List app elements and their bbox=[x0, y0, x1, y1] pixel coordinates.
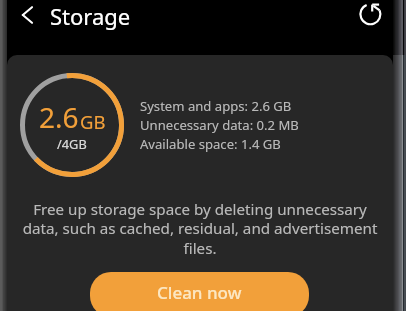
staticText: Storage bbox=[50, 1, 131, 31]
button[interactable]: Refresh bbox=[357, 1, 383, 27]
button[interactable]: Clean now bbox=[90, 272, 309, 311]
staticText: 2.6 bbox=[39, 98, 79, 136]
staticText: GB bbox=[80, 109, 106, 134]
staticText: System and apps: 2.6 GB Unnecessary data… bbox=[140, 97, 299, 153]
staticText: Clean now bbox=[157, 281, 242, 304]
staticText: /4GB bbox=[57, 135, 87, 152]
button[interactable]: Back bbox=[14, 0, 42, 30]
staticText: Free up storage space by deleting unnece… bbox=[13, 199, 387, 259]
